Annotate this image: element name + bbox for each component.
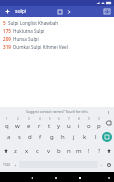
button[interactable]: Add recipient [3,7,12,16]
button[interactable]: Backspace [104,116,113,130]
staticText: o [87,122,91,130]
button[interactable]: . [98,158,105,171]
staticText: 319 [3,44,11,50]
button[interactable]: 8 [74,116,84,130]
button[interactable]: 5 [0,19,114,27]
button[interactable]: Home [52,174,59,181]
staticText: 3 [28,117,30,121]
button[interactable]: j [68,130,79,144]
staticText: l [95,133,97,141]
staticText: p [97,122,101,130]
staticText: 4 [39,117,41,121]
button[interactable]: Keyboard toggle [105,174,112,181]
button[interactable]: s [14,130,24,144]
staticText: z [14,147,17,155]
button[interactable]: Shift [104,144,113,158]
staticText: , [15,161,17,168]
button[interactable]: b [54,144,64,158]
staticText: h [61,133,65,141]
button[interactable]: 209 [0,35,114,43]
staticText: 6 [58,117,60,121]
button[interactable]: d [24,130,35,144]
button[interactable]: 1 [1,116,12,130]
staticText: 5 [3,20,6,26]
button[interactable]: Enter [102,132,112,142]
staticText: ? [98,148,101,155]
button[interactable]: g [46,130,57,144]
button[interactable]: x [21,144,32,158]
staticText: x [25,147,29,155]
button[interactable]: 0 [94,116,104,130]
staticText: f [39,133,42,141]
staticText: d [28,133,32,141]
button[interactable]: 7 [64,116,74,130]
button[interactable]: Back [28,174,35,181]
button[interactable]: 3 [23,116,34,130]
button[interactable]: 9 [84,116,94,130]
button[interactable]: f [35,130,46,144]
staticText: k [83,133,87,141]
button[interactable]: 319 [0,43,114,51]
button[interactable]: ? [94,144,104,158]
staticText: Huklutna Sulpi [13,28,45,34]
staticText: q [5,122,9,130]
button[interactable]: v [43,144,54,158]
button[interactable]: h [57,130,68,144]
staticText: Dumkai Sulpi Kihmei Veel [13,44,68,50]
staticText: t [48,122,51,130]
staticText: Suggest contact names? Touch for info. [26,109,89,114]
button[interactable]: ! [84,144,94,158]
button[interactable]: n [64,144,74,158]
button[interactable]: k [79,130,90,144]
staticText: Sulpi Longlist Khawbah [8,20,59,26]
staticText: 1 [6,117,8,121]
button[interactable]: ?123 [1,158,12,171]
button[interactable]: z [10,144,21,158]
staticText: ?123 [3,163,10,167]
button[interactable]: c [32,144,43,158]
button[interactable]: Emoji [105,158,113,171]
staticText: e [27,122,31,130]
button[interactable]: Shift [1,144,10,158]
staticText: w [15,122,20,130]
staticText: i [78,122,80,130]
button[interactable]: l [90,130,101,144]
staticText: r [38,122,41,130]
staticText: 5 [49,117,51,121]
button[interactable]: 175 [0,27,114,35]
staticText: m [76,147,82,155]
staticText: j [73,133,75,141]
button[interactable]: Recent apps [76,174,83,181]
button[interactable]: Clear [56,8,64,16]
staticText: b [57,147,61,155]
staticText: 9 [88,117,90,121]
staticText: Hunsa Sulpi [13,36,39,42]
staticText: 175 [3,28,11,34]
staticText: sulpi [15,8,27,15]
staticText: . [101,161,103,168]
button[interactable]: 6 [54,116,64,130]
staticText: 209 [3,36,11,42]
button[interactable]: a [4,130,14,144]
button[interactable]: m [74,144,84,158]
button[interactable]: 5 [44,116,54,130]
button[interactable]: 2 [12,116,23,130]
staticText: s [18,133,21,141]
staticText: v [47,147,51,155]
button[interactable]: Dial pad [102,7,111,16]
staticText: a [7,133,11,141]
staticText: y [57,122,61,130]
staticText: u [67,122,71,130]
staticText: c [36,147,39,155]
button[interactable]: 4 [34,116,44,130]
staticText: 0 [98,117,100,121]
staticText: 2 [17,117,19,121]
staticText: 7 [68,117,70,121]
staticText: g [50,133,54,141]
staticText: 8 [78,117,80,121]
staticText: ! [88,148,90,155]
button[interactable]: , [12,158,19,171]
button[interactable]: Send [65,8,73,16]
button[interactable]: More options [105,109,111,115]
